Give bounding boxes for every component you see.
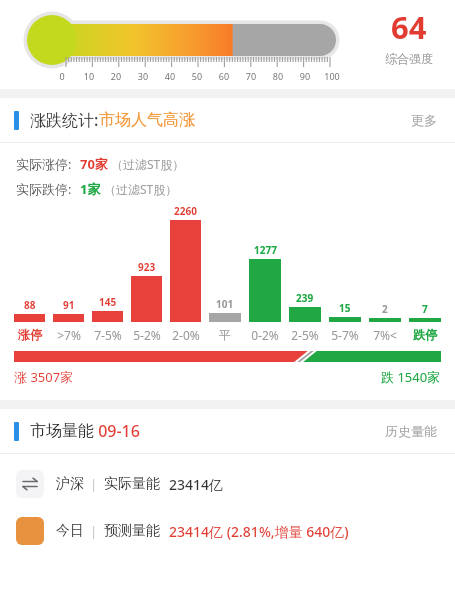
staticText: 64 <box>391 6 427 48</box>
staticText: 90 <box>295 70 315 82</box>
staticText: 跌 1540家 <box>381 368 441 386</box>
staticText: 综合强度 <box>385 51 433 66</box>
staticText: 88 <box>24 298 36 312</box>
staticText: （过滤ST股） <box>104 181 178 197</box>
staticText: 实际量能 <box>104 475 160 493</box>
staticText: 20 <box>106 70 126 82</box>
staticText: 实际跌停: <box>16 180 72 198</box>
staticText: | <box>90 475 98 493</box>
staticText: 09-16 <box>94 420 140 442</box>
staticText: 市场人气高涨 <box>99 110 195 130</box>
other: 切换指数 <box>16 470 44 498</box>
staticText: 7-5% <box>94 327 122 343</box>
staticText: 23414亿 <box>169 475 224 494</box>
staticText: 1277 <box>254 243 277 257</box>
staticText: 100 <box>322 70 342 82</box>
button[interactable]: 今日 <box>0 514 455 548</box>
staticText: 0 <box>52 70 72 82</box>
staticText: 60 <box>214 70 234 82</box>
staticText: 91 <box>63 298 75 312</box>
staticText: 更多 <box>411 112 437 128</box>
button[interactable]: 更多 <box>407 108 441 132</box>
staticText: 10 <box>79 70 99 82</box>
staticText: 101 <box>216 297 234 311</box>
staticText: 预测量能 <box>104 522 160 540</box>
staticText: 2 <box>382 302 388 316</box>
staticText: | <box>90 522 98 540</box>
staticText: 2-5% <box>291 327 319 343</box>
staticText: >7% <box>57 327 81 343</box>
staticText: 5-7% <box>331 327 359 343</box>
staticText: 50 <box>187 70 207 82</box>
staticText: 7%< <box>373 327 397 343</box>
staticText: 80 <box>268 70 288 82</box>
staticText: 7 <box>422 302 428 316</box>
staticText: 沪深 <box>56 475 84 493</box>
staticText: 跌停 <box>413 327 437 342</box>
button[interactable]: 切换指数 <box>0 467 455 501</box>
staticText: 0-2% <box>251 327 279 343</box>
staticText: 涨跌统计: <box>30 109 99 131</box>
staticText: （过滤ST股） <box>111 156 185 172</box>
staticText: 市场量能 <box>30 421 94 441</box>
staticText: 今日 <box>56 522 84 540</box>
staticText: 2-0% <box>172 327 200 343</box>
staticText: 70家 <box>80 155 108 173</box>
staticText: 923 <box>138 260 156 274</box>
staticText: 5-2% <box>133 327 161 343</box>
staticText: 2260 <box>174 204 197 218</box>
staticText: 30 <box>133 70 153 82</box>
staticText: 15 <box>339 301 351 315</box>
staticText: 70 <box>241 70 261 82</box>
staticText: 历史量能 <box>385 423 437 439</box>
staticText: 145 <box>99 295 117 309</box>
staticText: 23414亿 (2.81%,增量 640亿) <box>169 522 349 541</box>
staticText: 40 <box>160 70 180 82</box>
staticText: 涨 3507家 <box>14 368 74 386</box>
staticText: 239 <box>296 291 314 305</box>
staticText: 平 <box>219 327 231 342</box>
button[interactable]: 历史量能 <box>381 419 441 443</box>
staticText: 涨停 <box>18 327 42 342</box>
staticText: 实际涨停: <box>16 155 72 173</box>
staticText: 1家 <box>80 180 101 198</box>
